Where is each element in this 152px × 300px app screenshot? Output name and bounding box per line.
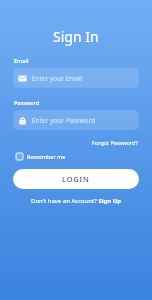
staticText: LOGIN bbox=[62, 174, 90, 184]
staticText: Remember me bbox=[27, 153, 66, 160]
button[interactable]: LOGIN bbox=[13, 169, 139, 189]
staticText: Forgot Password? bbox=[92, 139, 138, 146]
staticText: Don't have an Account? Sign Up bbox=[31, 197, 122, 205]
button[interactable]: Enter your Password bbox=[13, 110, 139, 130]
button[interactable]: Don't have an Account? Sign Up bbox=[29, 196, 124, 206]
staticText: Email bbox=[14, 57, 29, 64]
button[interactable]: Remember me bbox=[13, 151, 70, 162]
button[interactable]: Forgot Password? bbox=[91, 138, 139, 147]
staticText: Enter your Password bbox=[32, 116, 96, 125]
staticText: Enter your Email bbox=[32, 74, 83, 83]
button[interactable]: Enter your Email bbox=[13, 68, 139, 88]
staticText: Password bbox=[14, 99, 40, 106]
staticText: Sign In bbox=[53, 27, 99, 46]
